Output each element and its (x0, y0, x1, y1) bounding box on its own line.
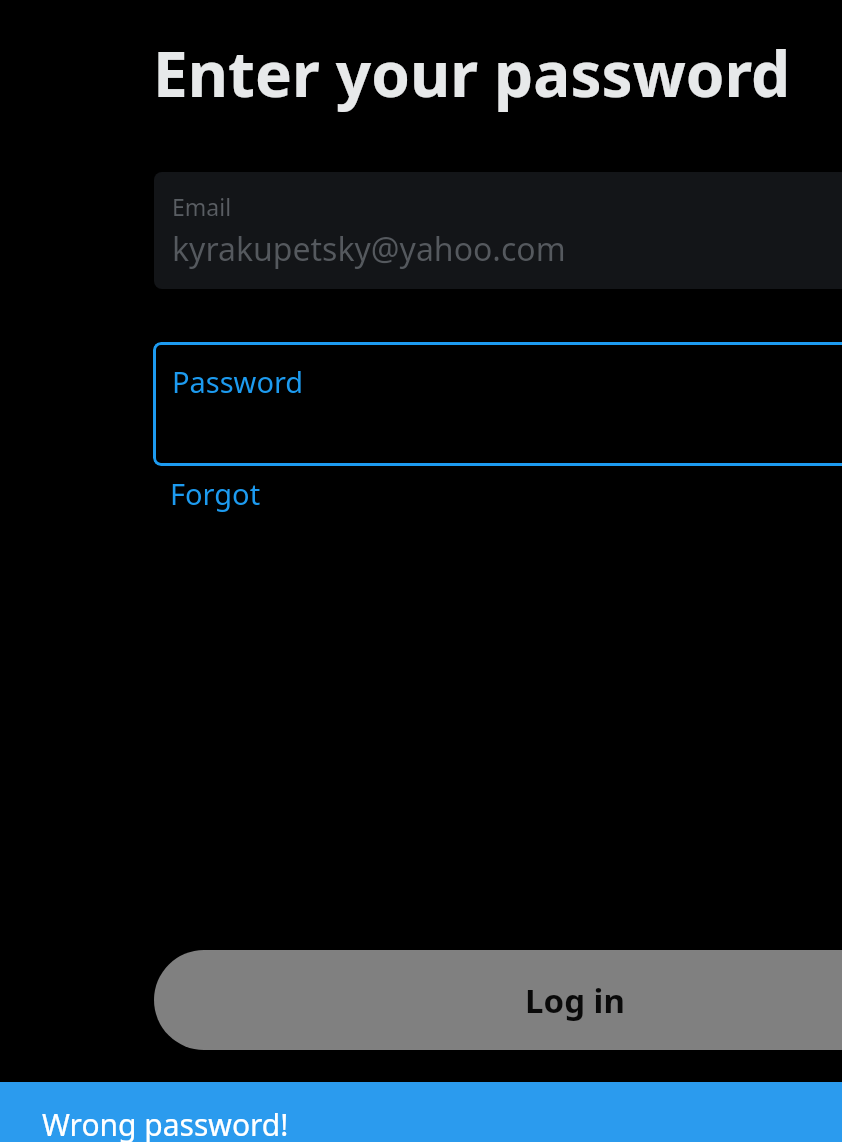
staticText: Password (172, 362, 304, 401)
staticText: Log in (525, 978, 625, 1023)
staticText: kyrakupetsky@yahoo.com (172, 227, 566, 271)
button[interactable]: Forgot password? (170, 474, 386, 512)
button[interactable]: Password (153, 342, 842, 466)
button[interactable]: Log in (154, 950, 842, 1050)
button[interactable]: Wrong password notification (0, 1082, 842, 1142)
staticText: Email (172, 191, 232, 222)
staticText: Wrong password! (42, 1104, 289, 1142)
button[interactable]: Email (154, 172, 842, 289)
staticText: Enter your password (153, 31, 791, 115)
staticText: Forgot password? (170, 474, 386, 512)
